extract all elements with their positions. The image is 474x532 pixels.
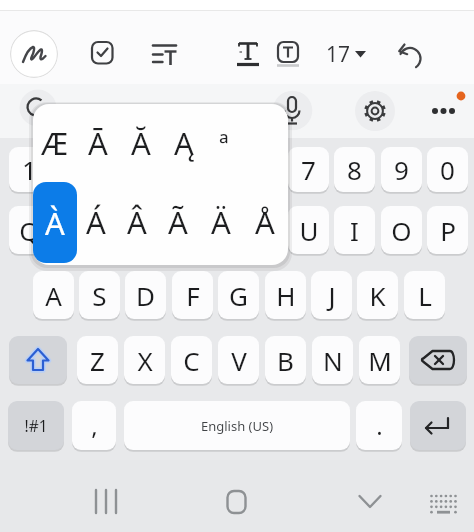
button[interactable]: [428, 488, 460, 518]
button[interactable]: C: [171, 336, 212, 384]
button[interactable]: [88, 38, 116, 68]
button[interactable]: [234, 38, 262, 70]
staticText: 4: [162, 152, 177, 187]
staticText: !#1: [24, 415, 48, 436]
staticText: Y: [254, 213, 269, 248]
button[interactable]: A: [33, 271, 74, 319]
staticText: O: [391, 213, 412, 248]
button[interactable]: Ä: [200, 192, 242, 252]
staticText: W: [64, 213, 89, 248]
button[interactable]: [271, 91, 311, 131]
button[interactable]: E: [102, 206, 143, 254]
button[interactable]: Ą: [163, 113, 205, 173]
button[interactable]: 17: [322, 38, 370, 70]
button[interactable]: Y: [241, 206, 282, 254]
button[interactable]: [355, 91, 395, 131]
button[interactable]: N: [312, 336, 353, 384]
button[interactable]: .: [356, 401, 402, 450]
button[interactable]: [394, 38, 426, 70]
staticText: 7: [301, 152, 316, 187]
staticText: V: [231, 343, 247, 378]
button[interactable]: [9, 336, 67, 384]
button[interactable]: U: [288, 206, 329, 254]
button[interactable]: 3: [102, 147, 143, 192]
button[interactable]: [410, 401, 466, 450]
button[interactable]: Ă: [120, 113, 162, 173]
staticText: Ā: [88, 122, 108, 164]
staticText: L: [418, 278, 432, 313]
button[interactable]: S: [79, 271, 120, 319]
button[interactable]: H: [265, 271, 306, 319]
button[interactable]: M: [359, 336, 400, 384]
staticText: ,: [91, 409, 98, 442]
staticText: À: [45, 202, 65, 244]
button[interactable]: B: [265, 336, 306, 384]
button[interactable]: W: [56, 206, 97, 254]
button[interactable]: R: [149, 206, 190, 254]
button[interactable]: 2: [56, 147, 97, 192]
staticText: T: [208, 213, 223, 248]
button[interactable]: [274, 38, 304, 70]
button[interactable]: Q: [9, 206, 50, 254]
button[interactable]: Ā: [77, 113, 119, 173]
staticText: S: [92, 278, 107, 313]
staticText: Æ: [41, 122, 69, 164]
button[interactable]: Æ: [34, 113, 76, 173]
button[interactable]: J: [311, 271, 352, 319]
button[interactable]: F: [172, 271, 213, 319]
button[interactable]: [86, 481, 126, 521]
button[interactable]: 1: [9, 147, 50, 192]
button[interactable]: T: [195, 206, 236, 254]
button[interactable]: !#1: [8, 401, 64, 450]
button[interactable]: [350, 481, 390, 521]
button[interactable]: Å: [244, 192, 286, 252]
staticText: Á: [86, 201, 106, 243]
button[interactable]: D: [125, 271, 166, 319]
button[interactable]: À: [33, 182, 77, 263]
button[interactable]: [216, 481, 256, 521]
button[interactable]: Á: [75, 192, 117, 252]
staticText: E: [115, 213, 130, 248]
button[interactable]: Ã: [157, 192, 199, 252]
button[interactable]: X: [124, 336, 165, 384]
staticText: Ą: [174, 122, 194, 164]
button[interactable]: V: [218, 336, 259, 384]
button[interactable]: [409, 336, 467, 384]
button[interactable]: I: [334, 206, 375, 254]
button[interactable]: Â: [116, 192, 158, 252]
button[interactable]: 7: [288, 147, 329, 192]
staticText: Å: [255, 201, 275, 243]
button[interactable]: [423, 91, 463, 131]
staticText: Z: [90, 343, 105, 378]
staticText: 8: [347, 152, 362, 187]
button[interactable]: K: [357, 271, 398, 319]
staticText: D: [136, 278, 155, 313]
button[interactable]: 4: [149, 147, 190, 192]
button[interactable]: English (US): [124, 401, 350, 450]
button[interactable]: [150, 40, 180, 68]
button[interactable]: P: [427, 206, 468, 254]
button[interactable]: G: [218, 271, 259, 319]
button[interactable]: L: [404, 271, 445, 319]
button[interactable]: ª: [203, 113, 245, 173]
staticText: 1: [22, 152, 37, 187]
button[interactable]: 8: [334, 147, 375, 192]
staticText: B: [277, 343, 294, 378]
button[interactable]: O: [381, 206, 422, 254]
button[interactable]: Z: [77, 336, 118, 384]
staticText: X: [137, 343, 153, 378]
staticText: U: [299, 213, 319, 248]
staticText: N: [323, 343, 343, 378]
button[interactable]: ,: [72, 401, 116, 450]
staticText: 2: [69, 152, 84, 187]
button[interactable]: [10, 30, 58, 78]
button[interactable]: 9: [381, 147, 422, 192]
staticText: English (US): [201, 417, 274, 435]
button[interactable]: 0: [427, 147, 468, 192]
staticText: A: [45, 278, 62, 313]
staticText: Ã: [168, 201, 188, 243]
staticText: .: [376, 409, 383, 442]
